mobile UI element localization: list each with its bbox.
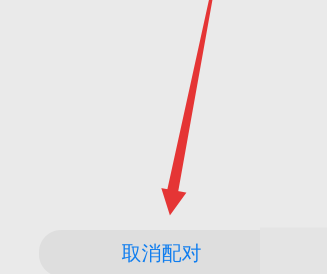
staticText: 取消配对 [121,241,201,266]
button[interactable]: 取消配对 [39,230,284,274]
